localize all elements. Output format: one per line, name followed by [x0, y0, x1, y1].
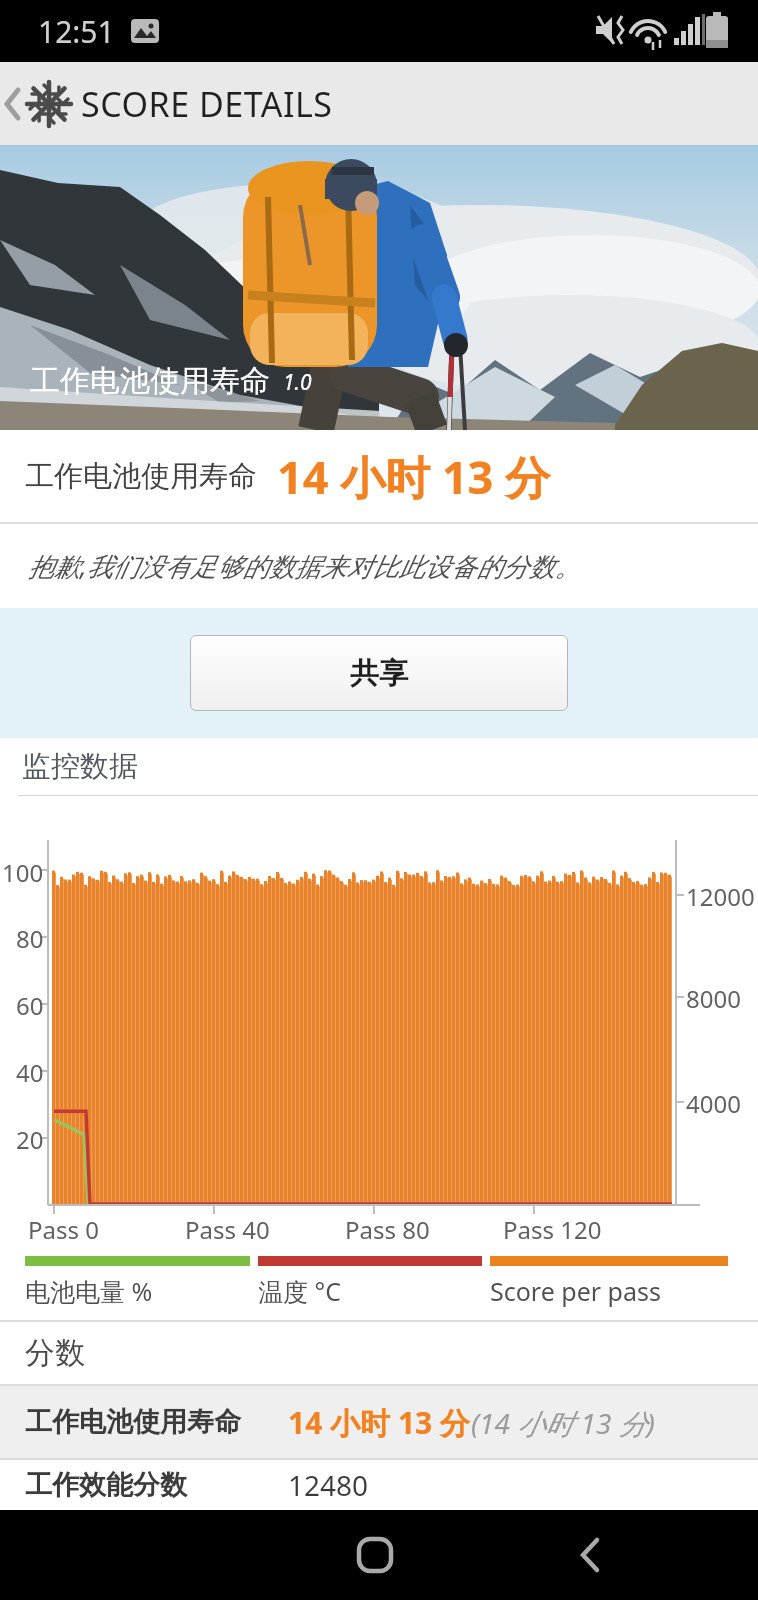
- staticText: 12:51: [38, 11, 115, 52]
- staticText: 共享: [350, 655, 408, 692]
- staticText: 电池电量 %: [25, 1274, 153, 1308]
- button[interactable]: [0, 62, 26, 145]
- staticText: (14 小时 13 分): [471, 1404, 655, 1442]
- staticText: Pass 80: [345, 1213, 430, 1246]
- staticText: Pass 120: [503, 1213, 602, 1246]
- staticText: Pass 0: [28, 1213, 99, 1246]
- staticText: 60: [16, 989, 44, 1022]
- staticText: 工作电池使用寿命: [25, 458, 257, 495]
- staticText: 4000: [686, 1087, 741, 1120]
- staticText: 8000: [686, 982, 741, 1015]
- staticText: 工作电池使用寿命: [25, 1405, 241, 1439]
- staticText: 12480: [288, 1466, 369, 1504]
- button[interactable]: 共享: [190, 635, 568, 711]
- staticText: 20: [16, 1123, 44, 1156]
- staticText: 14 小时 13 分: [277, 446, 551, 507]
- staticText: 14 小时 13 分: [288, 1402, 471, 1443]
- staticText: 80: [16, 922, 44, 955]
- staticText: 温度 °C: [258, 1274, 342, 1308]
- staticText: 分数: [25, 1334, 85, 1372]
- staticText: 40: [16, 1056, 44, 1089]
- staticText: 工作效能分数: [25, 1468, 187, 1502]
- staticText: 100: [2, 856, 44, 889]
- staticText: Pass 40: [185, 1213, 270, 1246]
- button[interactable]: [345, 1525, 405, 1585]
- staticText: 抱歉,我们没有足够的数据来对比此设备的分数。: [28, 548, 581, 584]
- button[interactable]: 工作效能分数: [0, 1460, 758, 1510]
- staticText: Score per pass: [490, 1274, 661, 1308]
- button[interactable]: [560, 1525, 620, 1585]
- staticText: 12000: [686, 880, 755, 913]
- staticText: 工作电池使用寿命: [30, 362, 270, 400]
- button[interactable]: 工作电池使用寿命: [0, 1386, 758, 1458]
- staticText: 监控数据: [22, 748, 138, 785]
- staticText: 1.0: [283, 368, 312, 397]
- staticText: SCORE DETAILS: [81, 81, 333, 127]
